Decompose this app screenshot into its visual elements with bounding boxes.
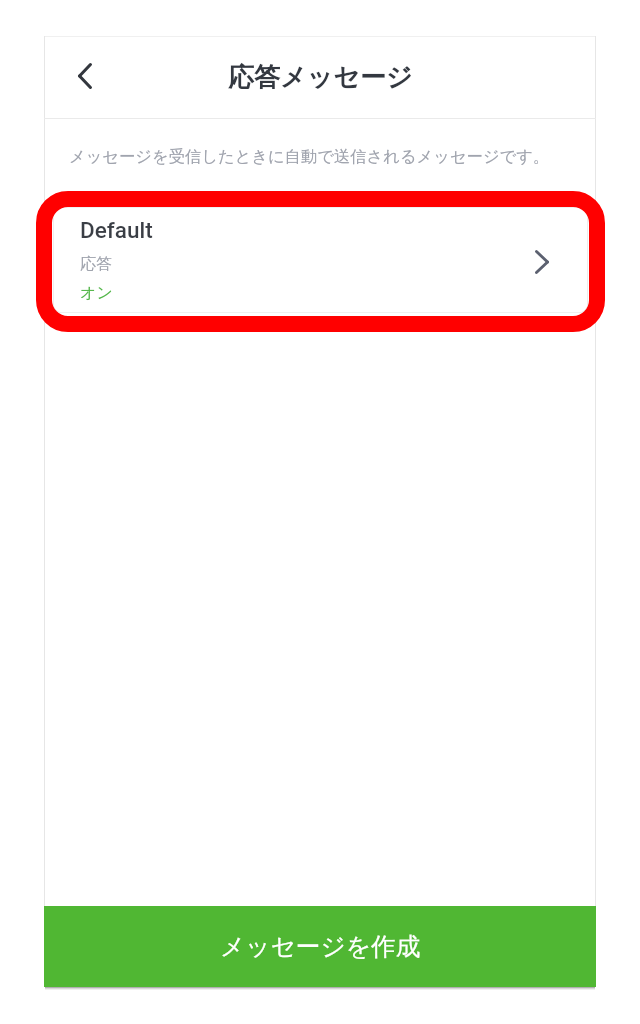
button[interactable]: Default xyxy=(53,207,588,313)
staticText: Default xyxy=(80,217,153,243)
staticText: オン xyxy=(80,283,113,303)
staticText: 応答メッセージ xyxy=(228,61,413,94)
staticText: 応答 xyxy=(80,254,112,274)
button[interactable]: メッセージを作成 xyxy=(44,906,596,987)
button[interactable]: Back xyxy=(59,56,111,96)
staticText: メッセージを作成 xyxy=(220,931,421,962)
staticText: メッセージを受信したときに自動で送信されるメッセージです。 xyxy=(69,146,550,167)
